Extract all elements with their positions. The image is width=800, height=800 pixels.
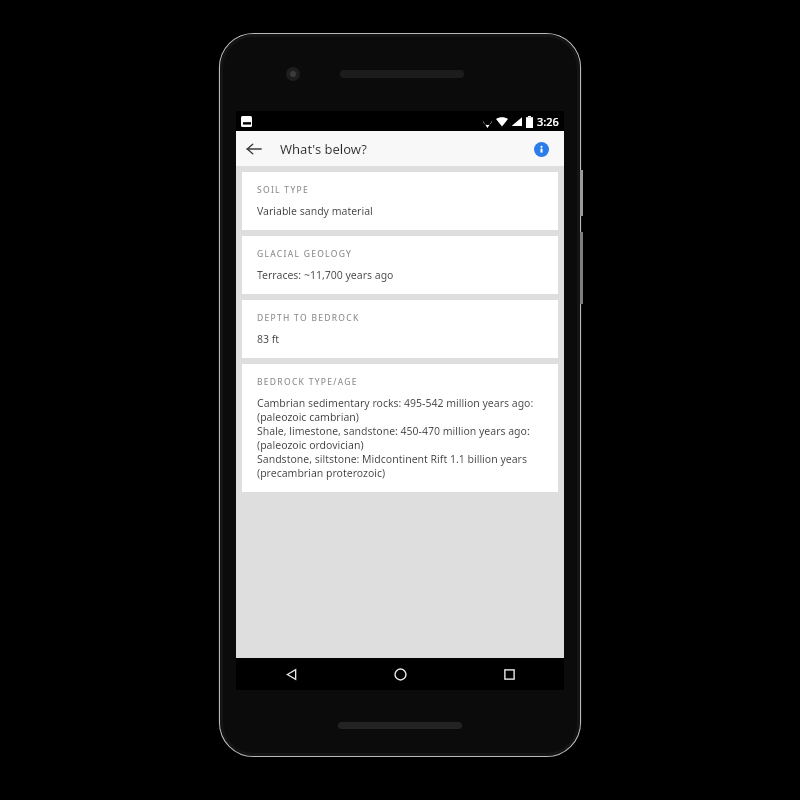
staticText: Sandstone, siltstone: Midcontinent Rift … [257,452,546,466]
staticText: 3:26 [537,114,559,129]
staticText: 83 ft [257,332,280,346]
staticText: Cambrian sedimentary rocks: 495-542 mill… [257,396,534,410]
staticText: (precambrian proterozoic) [257,466,386,480]
staticText: BEDROCK TYPE/AGE [257,376,358,388]
staticText: SOIL TYPE [257,184,309,196]
button[interactable]: GLACIAL GEOLOGY [242,236,558,294]
staticText: What's below? [280,140,367,158]
staticText: (paleozoic ordovician) [257,438,364,452]
staticText: (paleozoic cambrian) [257,410,359,424]
button[interactable]: Back [236,131,271,166]
staticText: GLACIAL GEOLOGY [257,248,353,260]
button[interactable]: DEPTH TO BEDROCK [242,300,558,358]
button[interactable]: SOIL TYPE [242,172,558,230]
button[interactable]: Info [524,132,558,166]
button[interactable]: Home [346,658,455,690]
staticText: Variable sandy material [257,204,373,218]
staticText: Shale, limestone, sandstone: 450-470 mil… [257,424,530,438]
staticText: Terraces: ~11,700 years ago [257,268,394,282]
button[interactable]: Back [236,658,346,690]
button[interactable]: BEDROCK TYPE/AGE [242,364,558,492]
button[interactable]: Recent apps [455,658,564,690]
staticText: DEPTH TO BEDROCK [257,312,360,324]
